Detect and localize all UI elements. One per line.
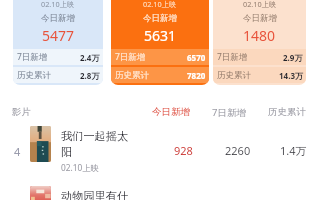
- staticText: 7日新增: [17, 51, 48, 63]
- button[interactable]: 4: [0, 122, 320, 184]
- staticText: 历史累计: [17, 70, 51, 81]
- button[interactable]: 02.10上映: [213, 0, 306, 85]
- staticText: 5631: [144, 26, 177, 45]
- button[interactable]: 02.10上映: [111, 0, 209, 85]
- staticText: 02.10上映: [41, 0, 75, 9]
- staticText: 02.10上映: [61, 162, 99, 173]
- button[interactable]: 02.10上映: [13, 0, 103, 85]
- staticText: 02.10上映: [243, 0, 277, 9]
- staticText: 历史累计: [268, 106, 306, 118]
- staticText: 5477: [42, 26, 75, 45]
- staticText: 影片: [12, 106, 31, 118]
- button[interactable]: 7日新增: [201, 102, 257, 122]
- button[interactable]: 历史累计: [259, 102, 315, 122]
- staticText: 历史累计: [115, 70, 149, 81]
- staticText: 动物园里有什么: [61, 189, 133, 200]
- staticText: 7日新增: [212, 106, 246, 119]
- staticText: 今日新增: [41, 13, 75, 24]
- staticText: 1480: [243, 26, 276, 45]
- staticText: 2.8万: [80, 70, 100, 81]
- button[interactable]: 5: [0, 182, 320, 200]
- staticText: 02.10上映: [143, 0, 177, 9]
- staticText: 1.4万: [280, 143, 307, 157]
- staticText: 6570: [187, 52, 206, 63]
- staticText: 7820: [187, 70, 206, 81]
- staticText: 历史累计: [217, 70, 251, 81]
- staticText: 2260: [225, 143, 251, 157]
- staticText: 今日新增: [143, 13, 177, 24]
- staticText: 今日新增: [243, 13, 277, 24]
- staticText: 7日新增: [217, 51, 248, 63]
- staticText: 14.3万: [279, 70, 303, 81]
- staticText: 2.4万: [80, 52, 100, 63]
- staticText: 今日新增: [152, 106, 190, 118]
- staticText: 我们一起摇太阳: [61, 129, 133, 159]
- staticText: 928: [174, 143, 193, 157]
- button[interactable]: 今日新增: [143, 102, 199, 122]
- staticText: 7日新增: [115, 51, 146, 63]
- staticText: 4: [14, 144, 21, 158]
- staticText: 2.9万: [283, 52, 303, 63]
